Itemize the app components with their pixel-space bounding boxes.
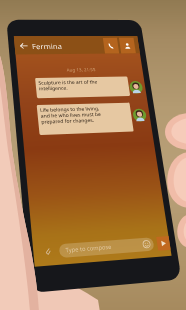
button[interactable] [0, 0, 186, 310]
